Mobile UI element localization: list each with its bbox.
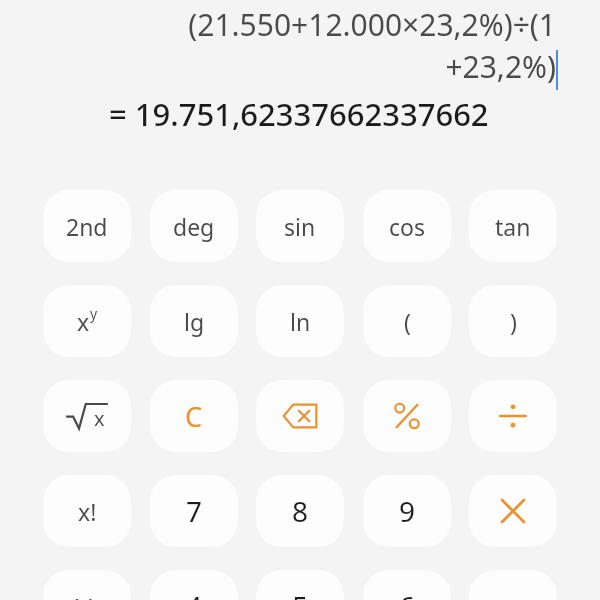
button[interactable]: cos [363, 190, 451, 262]
button[interactable]: sin [256, 190, 344, 262]
staticText: ( [404, 306, 411, 337]
button[interactable]: Square root [43, 380, 131, 452]
button[interactable]: 2nd [43, 190, 131, 262]
button[interactable]: 5 [256, 570, 344, 600]
button[interactable]: 7 [150, 475, 238, 547]
staticText: x [94, 405, 105, 432]
staticText: lg [184, 306, 205, 337]
button[interactable]: 4 [150, 570, 238, 600]
staticText: 5 [292, 587, 309, 600]
button[interactable]: C [150, 380, 238, 452]
button[interactable]: ( [363, 285, 451, 357]
staticText: = 19.751,62337662337662 [109, 93, 489, 135]
button[interactable]: x! [43, 475, 131, 547]
staticText: (21.550+12.000×23,2%)÷(1 +23,2%) [188, 4, 556, 87]
staticText: x! [78, 496, 97, 527]
button[interactable]: Multiply [469, 475, 557, 547]
staticText: 8 [292, 492, 309, 530]
staticText: tan [495, 211, 531, 242]
staticText: 1/x [70, 591, 104, 600]
button[interactable]: tan [469, 190, 557, 262]
button[interactable]: deg [150, 190, 238, 262]
button[interactable]: x to the power of y [43, 285, 131, 357]
staticText: y [90, 304, 98, 323]
staticText: cos [389, 211, 425, 242]
staticText: deg [173, 211, 215, 242]
button[interactable]: 6 [363, 570, 451, 600]
button[interactable]: Divide [469, 380, 557, 452]
staticText: C [185, 398, 203, 435]
button[interactable]: 9 [363, 475, 451, 547]
staticText: 2nd [66, 211, 108, 242]
button[interactable]: 8 [256, 475, 344, 547]
staticText: ) [510, 306, 517, 337]
button[interactable]: Percent [363, 380, 451, 452]
staticText: ln [290, 306, 311, 337]
button[interactable]: lg [150, 285, 238, 357]
staticText: 6 [399, 587, 416, 600]
button[interactable]: ln [256, 285, 344, 357]
staticText: 7 [186, 492, 203, 530]
staticText: x [77, 306, 90, 337]
button[interactable]: ) [469, 285, 557, 357]
button[interactable]: Backspace [256, 380, 344, 452]
staticText: 9 [399, 492, 416, 530]
button[interactable]: 1/x [43, 570, 131, 600]
staticText: 4 [186, 587, 203, 600]
staticText: sin [284, 211, 316, 242]
